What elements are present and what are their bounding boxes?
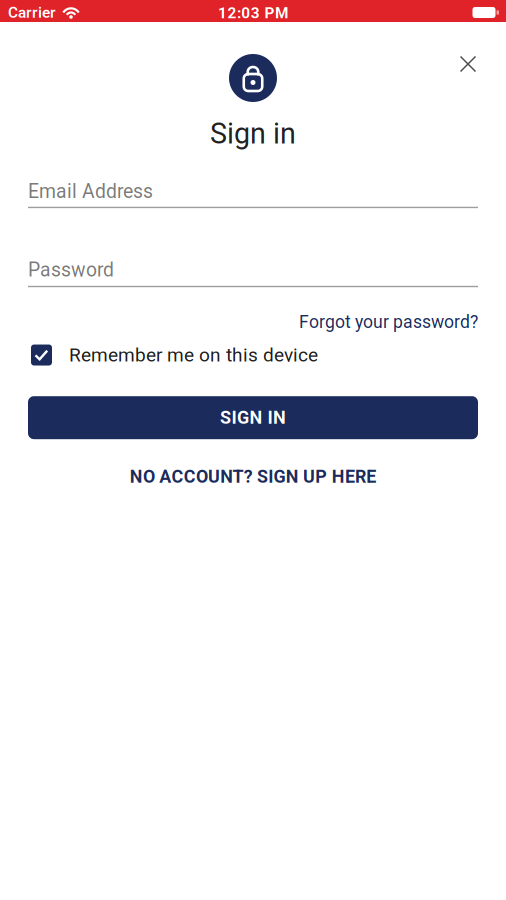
- button[interactable]: SIGN IN: [28, 396, 478, 439]
- staticText: Forgot your password?: [299, 312, 478, 332]
- staticText: Email Address: [28, 180, 153, 203]
- button[interactable]: Close: [460, 56, 476, 72]
- staticText: Carrier: [8, 3, 56, 21]
- staticText: 12:03 PM: [218, 4, 288, 22]
- button[interactable]: NO ACCOUNT? SIGN UP HERE: [130, 466, 376, 487]
- staticText: Sign in: [210, 117, 296, 151]
- staticText: NO ACCOUNT? SIGN UP HERE: [130, 466, 376, 487]
- button[interactable]: Forgot your password?: [299, 312, 478, 332]
- button[interactable]: Remember me on this device: [31, 344, 318, 366]
- staticText: Remember me on this device: [69, 344, 318, 366]
- staticText: Password: [28, 259, 114, 281]
- staticText: SIGN IN: [220, 407, 286, 428]
